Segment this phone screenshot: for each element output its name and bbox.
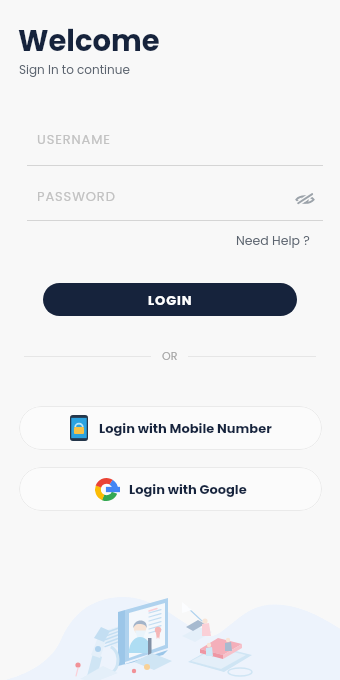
staticText: LOGIN bbox=[148, 291, 193, 309]
button[interactable]: Need Help ? bbox=[236, 232, 310, 249]
button[interactable]: Login with Google bbox=[19, 467, 322, 511]
staticText: Login with Google bbox=[129, 480, 247, 498]
staticText: PASSWORD bbox=[37, 187, 116, 205]
button[interactable]: Login with Mobile Number bbox=[19, 406, 322, 450]
button[interactable]: LOGIN bbox=[43, 283, 297, 316]
staticText: USERNAME bbox=[37, 130, 111, 148]
staticText: OR bbox=[162, 348, 178, 363]
staticText: Login with Mobile Number bbox=[99, 419, 272, 437]
staticText: Sign In to continue bbox=[19, 61, 130, 78]
staticText: Welcome bbox=[18, 21, 160, 62]
button[interactable]: Show password bbox=[292, 185, 318, 211]
